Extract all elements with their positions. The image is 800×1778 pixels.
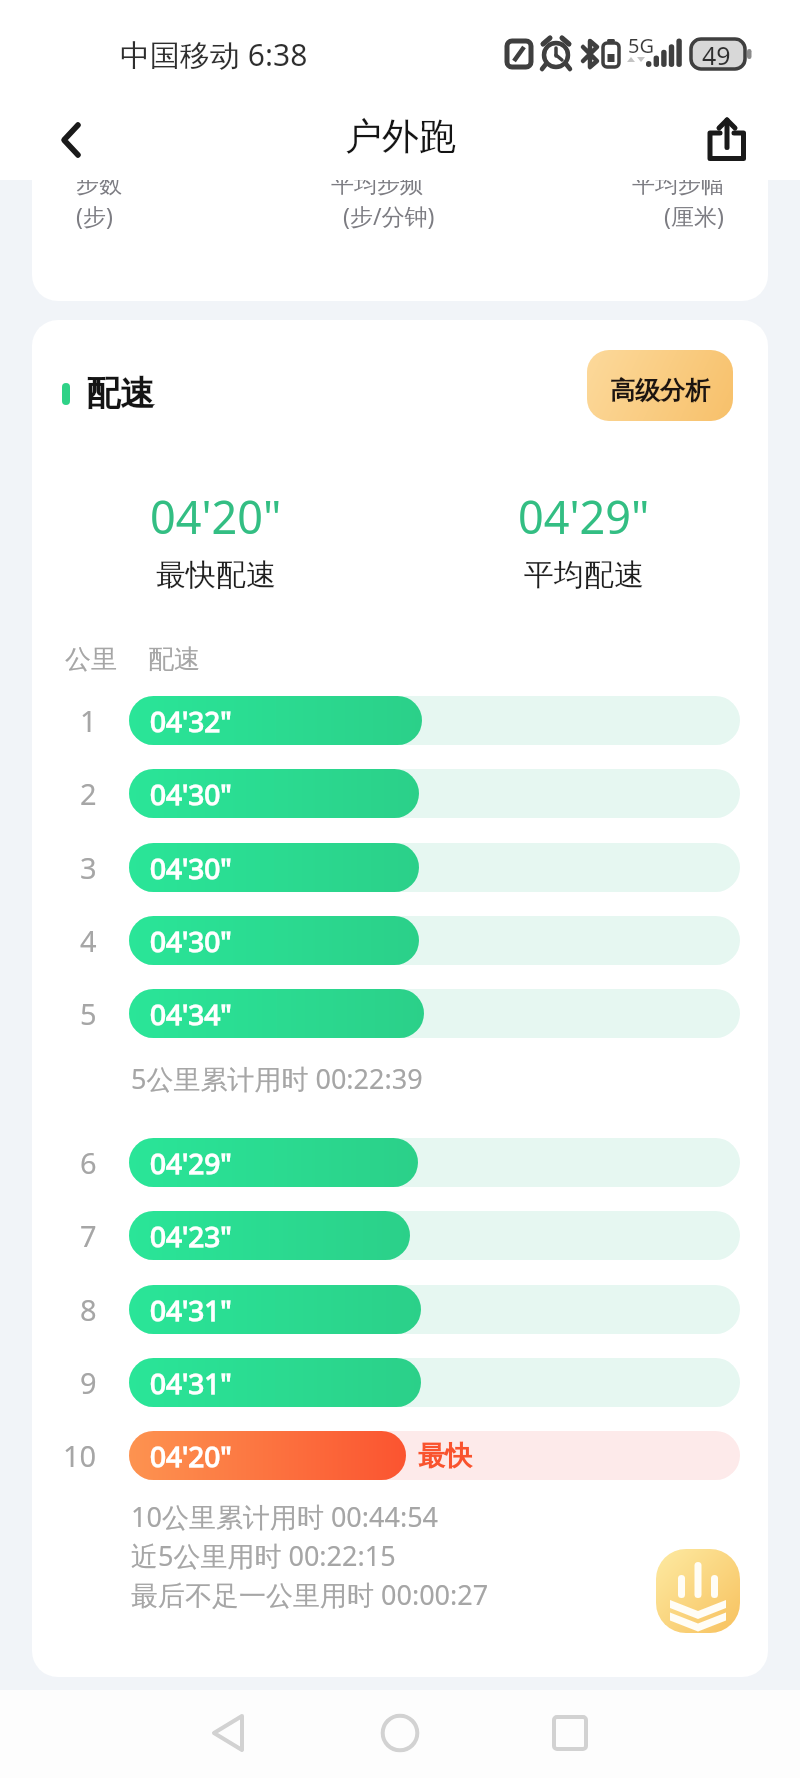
button[interactable]: 返回	[186, 1705, 242, 1761]
staticText: 公里	[65, 643, 117, 676]
staticText: 04'31"	[150, 1291, 232, 1329]
staticText: 近5公里用时 00:22:15	[131, 1537, 396, 1574]
staticText: 04'30"	[150, 922, 232, 960]
staticText: 04'34"	[150, 995, 232, 1033]
staticText: 5公里累计用时 00:22:39	[131, 1060, 423, 1097]
button[interactable]: 主页	[372, 1705, 428, 1761]
staticText: 高级分析	[610, 375, 710, 406]
staticText: 04'23"	[150, 1217, 232, 1255]
staticText: (步)	[76, 200, 113, 231]
staticText: 最快	[418, 1439, 472, 1473]
staticText: 04'32"	[150, 702, 232, 740]
staticText: 平均配速	[524, 556, 644, 594]
staticText: 10公里累计用时 00:44:54	[131, 1498, 439, 1535]
button[interactable]: 高级分析	[587, 350, 733, 421]
button[interactable]: 分享	[696, 108, 760, 172]
button[interactable]	[129, 1358, 740, 1407]
staticText: 2	[80, 774, 97, 813]
button[interactable]	[129, 843, 740, 892]
staticText: 6	[80, 1143, 97, 1182]
staticText: 04'29"	[518, 486, 650, 547]
staticText: 步数	[76, 180, 122, 199]
button[interactable]	[129, 1138, 740, 1187]
button[interactable]	[129, 1211, 740, 1260]
staticText: 04'30"	[150, 849, 232, 887]
staticText: 04'20"	[150, 1437, 232, 1475]
staticText: 1	[80, 701, 97, 740]
button[interactable]	[129, 916, 740, 965]
staticText: 9	[80, 1363, 97, 1402]
button[interactable]	[129, 696, 740, 745]
staticText: 平均步幅	[632, 180, 724, 199]
staticText: (厘米)	[664, 200, 724, 231]
staticText: 04'29"	[150, 1144, 232, 1182]
staticText: 户外跑	[345, 113, 456, 160]
staticText: 3	[80, 848, 97, 887]
button[interactable]	[129, 1285, 740, 1334]
button[interactable]	[129, 769, 740, 818]
button[interactable]	[129, 989, 740, 1038]
staticText: 5G	[628, 32, 654, 59]
staticText: 4	[80, 921, 97, 960]
staticText: 04'30"	[150, 775, 232, 813]
staticText: 04'31"	[150, 1364, 232, 1402]
staticText: 配速	[86, 372, 154, 415]
staticText: 04'20"	[150, 486, 282, 547]
staticText: 中国移动 6:38	[120, 34, 308, 75]
staticText: 7	[80, 1216, 97, 1255]
staticText: 8	[80, 1290, 97, 1329]
button[interactable]: 返回	[32, 108, 96, 172]
staticText: (步/分钟)	[343, 200, 435, 231]
button[interactable]	[129, 1431, 740, 1480]
staticText: 最后不足一公里用时 00:00:27	[131, 1576, 489, 1613]
button[interactable]: 最近任务	[542, 1705, 598, 1761]
staticText: 配速	[148, 643, 200, 676]
staticText: 平均步频	[331, 180, 423, 199]
staticText: 10	[63, 1436, 97, 1475]
staticText: 最快配速	[156, 556, 276, 594]
staticText: 5	[80, 994, 97, 1033]
button[interactable]: 数据图表	[656, 1549, 740, 1633]
staticText: 49	[702, 38, 731, 72]
